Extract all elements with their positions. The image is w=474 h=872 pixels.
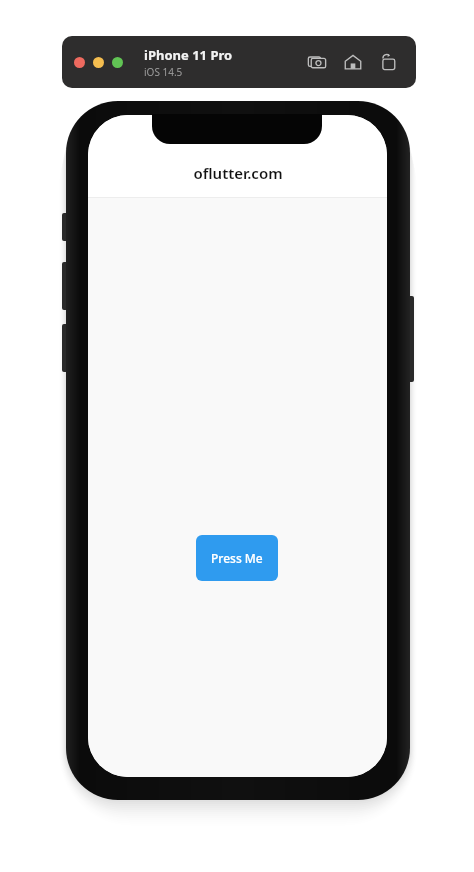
staticText: Press Me	[211, 550, 263, 566]
button[interactable]: Home	[340, 49, 366, 75]
button[interactable]	[93, 57, 104, 68]
button[interactable]	[74, 57, 85, 68]
staticText: iOS 14.5	[144, 65, 183, 79]
button[interactable]: Press Me	[196, 535, 278, 581]
staticText: iPhone 11 Pro	[144, 46, 233, 64]
button[interactable]: Screenshot	[304, 49, 330, 75]
staticText: oflutter.com	[193, 163, 283, 183]
button[interactable]	[112, 57, 123, 68]
button[interactable]: Rotate	[376, 49, 402, 75]
